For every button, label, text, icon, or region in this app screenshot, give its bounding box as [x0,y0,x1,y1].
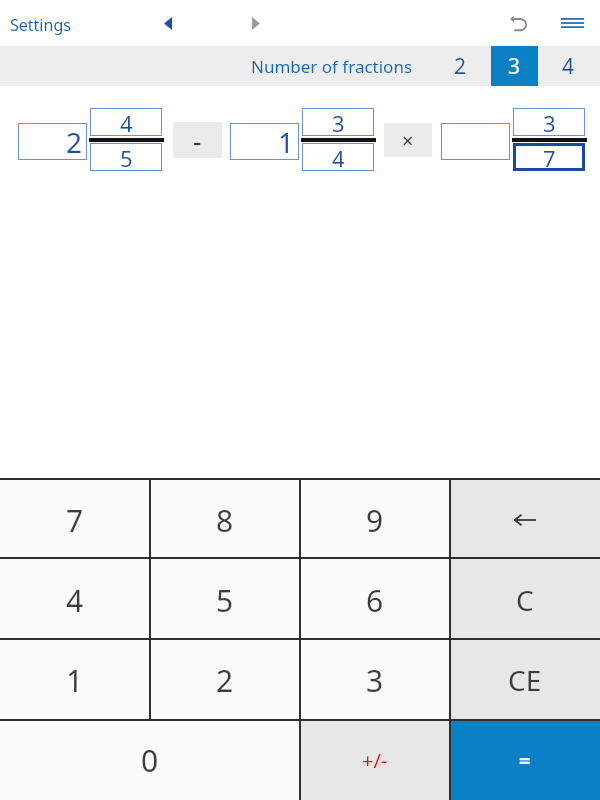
button[interactable] [553,8,591,38]
staticText: 5 [216,580,234,621]
button[interactable]: 3 [302,108,374,136]
button[interactable]: +/- [300,720,450,800]
button[interactable]: 6 [300,560,450,640]
staticText: 3 [508,52,521,81]
button[interactable] [152,8,184,38]
button[interactable]: × [384,123,432,157]
staticText: = [519,747,531,774]
button[interactable]: 3 [513,108,585,136]
staticText: +/- [362,747,388,774]
staticText: 3 [332,108,345,136]
button[interactable]: = [450,720,600,800]
staticText: 4 [66,580,84,621]
button[interactable]: Settings [0,8,86,42]
button[interactable] [503,8,533,38]
staticText: 3 [366,660,384,701]
button[interactable]: 4 [545,46,591,86]
button[interactable]: CE [450,640,600,720]
staticText: 2 [454,52,467,81]
staticText: 5 [120,143,133,171]
button[interactable]: 3 [491,46,538,86]
button[interactable]: 8 [150,480,300,560]
staticText: 2 [66,123,83,160]
button[interactable]: 9 [300,480,450,560]
button[interactable]: 0 [0,720,300,800]
button[interactable] [450,480,600,560]
staticText: 1 [278,123,295,160]
staticText: Number of fractions [251,55,413,78]
staticText: 9 [366,500,384,541]
button[interactable]: 4 [302,143,374,171]
staticText: 4 [562,52,575,81]
staticText: - [193,123,202,158]
staticText: 4 [120,108,133,136]
button[interactable]: 2 [18,123,87,160]
staticText: Settings [10,14,71,36]
staticText: 7 [543,143,556,171]
staticText: 1 [66,660,84,701]
button[interactable]: 3 [300,640,450,720]
staticText: 0 [141,740,159,781]
staticText: 3 [543,108,556,136]
button[interactable] [441,123,510,160]
button[interactable]: 1 [230,123,299,160]
button[interactable] [240,8,272,38]
button[interactable]: 7 [513,143,585,171]
staticText: 6 [366,580,384,621]
button[interactable]: 4 [0,560,150,640]
button[interactable]: 2 [436,46,484,86]
button[interactable]: C [450,560,600,640]
button[interactable]: 2 [150,640,300,720]
button[interactable]: - [173,122,222,158]
staticText: 8 [216,500,234,541]
button[interactable]: 5 [90,143,162,171]
button[interactable]: 5 [150,560,300,640]
button[interactable]: 4 [90,108,162,136]
button[interactable]: 7 [0,480,150,560]
staticText: 7 [66,500,84,541]
staticText: CE [508,661,542,699]
staticText: 4 [332,143,345,171]
staticText: × [402,127,414,154]
staticText: C [516,581,534,619]
button[interactable]: 1 [0,640,150,720]
staticText: 2 [216,660,234,701]
